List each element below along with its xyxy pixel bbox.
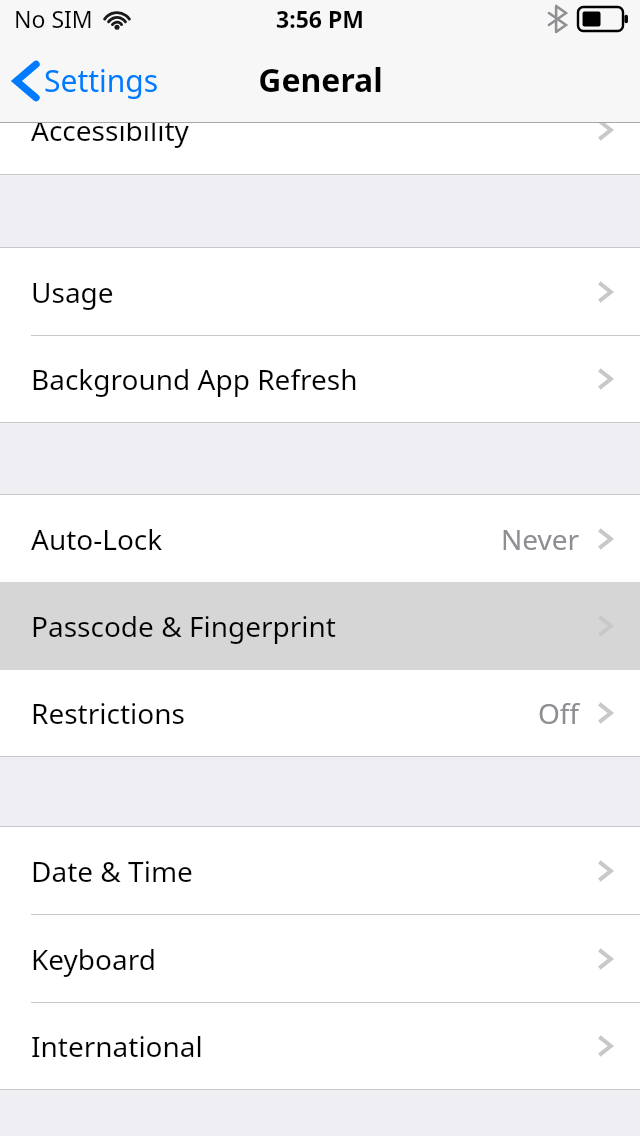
- button[interactable]: Auto-Lock: [0, 495, 640, 582]
- staticText: General: [258, 58, 383, 102]
- staticText: Background App Refresh: [31, 360, 358, 398]
- staticText: No SIM: [14, 3, 93, 34]
- staticText: Usage: [31, 273, 114, 311]
- staticText: Auto-Lock: [31, 520, 163, 558]
- button[interactable]: Restrictions: [0, 670, 640, 756]
- staticText: 3:56 PM: [276, 3, 364, 34]
- staticText: Keyboard: [31, 940, 156, 978]
- button[interactable]: Background App Refresh: [0, 336, 640, 422]
- staticText: Accessibility: [31, 123, 189, 149]
- staticText: Date & Time: [31, 852, 193, 890]
- staticText: International: [31, 1027, 203, 1065]
- button[interactable]: Back: [0, 54, 171, 107]
- button[interactable]: Keyboard: [0, 915, 640, 1002]
- button[interactable]: Accessibility: [0, 123, 640, 174]
- other: Back: [14, 62, 38, 100]
- button[interactable]: Passcode & Fingerprint: [0, 582, 640, 670]
- staticText: Settings: [44, 60, 159, 101]
- staticText: Never: [501, 520, 580, 558]
- staticText: Passcode & Fingerprint: [31, 607, 336, 645]
- staticText: Restrictions: [31, 694, 185, 732]
- button[interactable]: International: [0, 1003, 640, 1089]
- staticText: Off: [538, 694, 580, 732]
- button[interactable]: Date & Time: [0, 827, 640, 914]
- button[interactable]: Usage: [0, 248, 640, 335]
